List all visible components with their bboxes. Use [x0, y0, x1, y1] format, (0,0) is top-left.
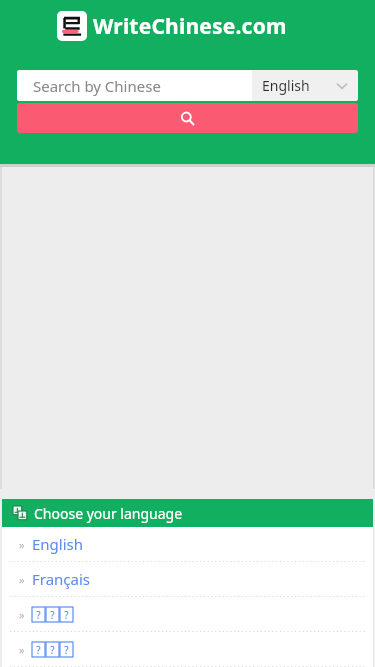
staticText: ? — [64, 608, 69, 622]
staticText: Search by Chinese — [33, 76, 161, 96]
button[interactable]: » — [2, 527, 373, 561]
button[interactable]: WriteChinese.com home — [57, 11, 287, 41]
button[interactable]: » — [2, 632, 373, 666]
staticText: ? — [36, 608, 41, 622]
button[interactable]: Search — [17, 103, 358, 133]
staticText: ? — [50, 608, 55, 622]
button[interactable]: Search by Chinese — [17, 70, 252, 101]
staticText: » — [19, 572, 25, 587]
button[interactable]: » — [2, 597, 373, 631]
staticText: » — [19, 607, 25, 622]
staticText: Choose your language — [34, 504, 183, 523]
button[interactable]: English — [252, 70, 358, 101]
staticText: ? — [64, 643, 69, 657]
staticText: WriteChinese.com — [93, 12, 287, 41]
staticText: » — [19, 642, 25, 657]
staticText: ? — [36, 643, 41, 657]
staticText: Français — [32, 569, 91, 589]
button[interactable]: » — [2, 562, 373, 596]
staticText: » — [19, 537, 25, 552]
staticText: English — [262, 76, 310, 95]
button[interactable]: Choose your language — [2, 499, 373, 527]
staticText: English — [32, 534, 84, 554]
staticText: ? — [50, 643, 55, 657]
